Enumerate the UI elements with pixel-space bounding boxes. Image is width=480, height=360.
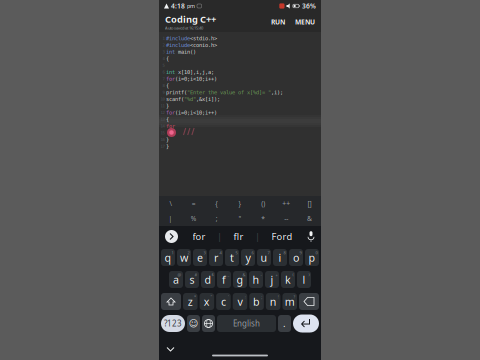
staticText: "Enter the value of x[%d]= "	[187, 89, 271, 95]
button[interactable]: flr	[233, 230, 243, 243]
button[interactable]: p	[305, 249, 319, 266]
button[interactable]: Voice input	[304, 231, 318, 242]
button[interactable]: "	[228, 211, 251, 226]
button[interactable]: \	[159, 196, 182, 211]
staticText: (i=0;i<10;i++)	[175, 76, 217, 82]
button[interactable]: f	[217, 271, 231, 288]
button[interactable]: |	[159, 211, 182, 226]
button[interactable]: w	[177, 249, 191, 266]
button[interactable]: u	[257, 249, 271, 266]
staticText: 11	[160, 104, 164, 108]
button[interactable]: x	[200, 293, 214, 310]
button[interactable]: ;	[205, 211, 228, 226]
staticText: o	[293, 250, 299, 265]
button[interactable]: g	[233, 271, 247, 288]
staticText: ++	[282, 199, 290, 208]
staticText: p	[308, 250, 315, 265]
button[interactable]: MENU	[290, 14, 320, 30]
staticText: ()	[261, 199, 265, 208]
staticText: 4	[162, 56, 164, 61]
staticText: 6	[251, 250, 253, 255]
button[interactable]: for	[192, 230, 205, 243]
button[interactable]: Hide keyboard	[159, 339, 182, 359]
button[interactable]: h	[249, 271, 263, 288]
button[interactable]: {	[205, 196, 228, 211]
button[interactable]: Shift	[161, 293, 181, 310]
button[interactable]: t	[225, 249, 239, 266]
staticText: "%d"	[184, 96, 196, 102]
staticText: *	[194, 294, 196, 299]
button[interactable]: RUN	[266, 14, 290, 30]
button[interactable]: ?123	[161, 315, 185, 332]
staticText: flr	[233, 230, 243, 243]
staticText: (i=0;i<10;i++)	[175, 110, 217, 116]
button[interactable]: c	[216, 293, 231, 310]
button[interactable]: ++	[275, 196, 298, 211]
staticText: |	[255, 230, 260, 243]
staticText: {	[166, 56, 169, 62]
button[interactable]: &	[298, 211, 321, 226]
staticText: d	[204, 272, 211, 287]
button[interactable]: --	[275, 211, 298, 226]
staticText: :	[245, 294, 246, 299]
staticText: y	[245, 250, 250, 265]
button[interactable]: .	[278, 315, 291, 332]
button[interactable]: Enter	[293, 314, 319, 332]
staticText: {	[215, 199, 218, 208]
button[interactable]: English	[217, 315, 276, 332]
staticText: <conio.h>	[190, 42, 217, 48]
staticText: }	[166, 103, 169, 109]
button[interactable]: o	[289, 249, 303, 266]
staticText: Coding C++	[165, 13, 216, 25]
staticText: i	[278, 250, 281, 265]
button[interactable]: *	[252, 211, 275, 226]
staticText: 9	[299, 250, 301, 255]
staticText: x	[204, 294, 210, 309]
button[interactable]: %	[182, 211, 205, 226]
button[interactable]: v	[233, 293, 247, 310]
button[interactable]: }	[228, 196, 251, 211]
button[interactable]: =	[182, 196, 205, 211]
staticText: scanf(	[166, 96, 184, 102]
staticText: u	[260, 250, 267, 265]
button[interactable]: r	[209, 249, 223, 266]
staticText: n	[270, 294, 277, 309]
button[interactable]: l	[297, 271, 311, 288]
button[interactable]: y	[241, 249, 255, 266]
button[interactable]: Backspace	[299, 293, 319, 310]
button[interactable]: k	[281, 271, 295, 288]
staticText: 7	[162, 77, 164, 81]
button[interactable]: Ford	[271, 230, 292, 243]
button[interactable]: n	[266, 293, 280, 310]
button[interactable]: Emoji	[187, 315, 200, 332]
staticText: #	[194, 272, 197, 277]
staticText: 15	[160, 131, 164, 135]
staticText: !	[278, 294, 279, 299]
staticText: ?	[293, 294, 295, 299]
staticText: 7	[267, 250, 269, 255]
staticText: 5	[162, 63, 164, 68]
staticText: []	[307, 199, 311, 208]
button[interactable]: i	[273, 249, 287, 266]
staticText: g	[236, 272, 243, 287]
button[interactable]: a	[169, 271, 183, 288]
button[interactable]: q	[161, 249, 175, 266]
staticText: +	[275, 272, 277, 277]
button[interactable]: z	[183, 293, 198, 310]
staticText: a	[173, 272, 179, 287]
button[interactable]: s	[185, 271, 199, 288]
staticText: 6	[162, 70, 164, 74]
button[interactable]: d	[201, 271, 215, 288]
button[interactable]: m	[282, 293, 297, 310]
staticText: ;	[261, 294, 262, 299]
button[interactable]: More suggestions	[162, 230, 181, 243]
button[interactable]: e	[193, 249, 207, 266]
button[interactable]: j	[265, 271, 279, 288]
staticText: }	[166, 143, 169, 149]
staticText: _	[227, 272, 229, 277]
button[interactable]: b	[249, 293, 264, 310]
button[interactable]: ()	[252, 196, 275, 211]
button[interactable]: []	[298, 196, 321, 211]
staticText: pm	[187, 2, 195, 10]
button[interactable]: Change language	[202, 315, 215, 332]
